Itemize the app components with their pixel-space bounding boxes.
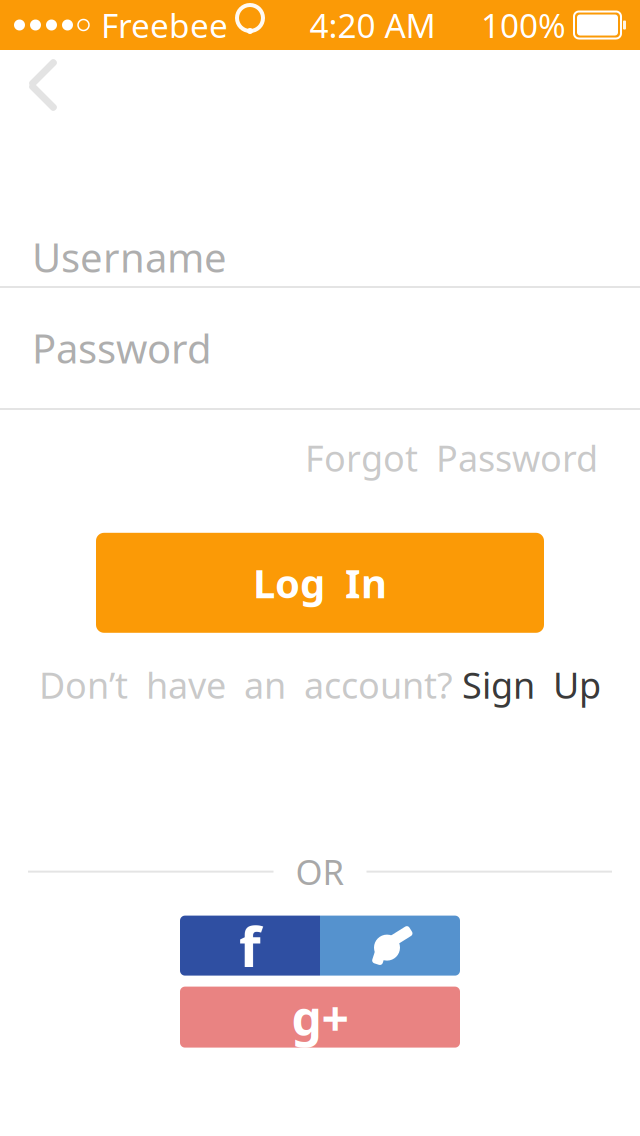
staticText: 4:20 AM [309, 3, 435, 47]
button[interactable]: Sign in with Facebook [180, 916, 320, 976]
staticText: Sign Up [462, 661, 601, 709]
staticText: f [239, 908, 261, 983]
button[interactable]: Log In [96, 533, 544, 633]
button[interactable]: Forgot Password [295, 426, 608, 490]
staticText: Forgot Password [305, 434, 598, 482]
staticText: OR [295, 849, 344, 895]
button[interactable]: Sign in with Twitter [320, 916, 460, 976]
button[interactable]: Sign Up [462, 661, 601, 709]
staticText: Freebee [101, 3, 228, 47]
button[interactable]: Back [8, 50, 78, 120]
staticText: g+ [291, 985, 348, 1049]
staticText: 100% [481, 3, 566, 47]
button[interactable]: Sign in with Google Plus [180, 987, 460, 1048]
staticText: Username [32, 230, 227, 283]
staticText: Don’t have an account? [39, 661, 462, 709]
staticText: Password [32, 321, 212, 374]
staticText: Log In [253, 556, 387, 609]
